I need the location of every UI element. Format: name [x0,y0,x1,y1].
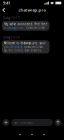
staticText: to message me: [4,26,25,29]
staticText: own AI chat at [4,45,23,49]
button[interactable]: Home [29,132,35,137]
button[interactable]: Hey, we've connected. Feel free [2,21,49,31]
staticText: chatwrap.pro [18,7,45,13]
staticText: Welcome to chatwrap.pro, your [4,42,46,45]
staticText: Today 10:18 [3,36,20,39]
button[interactable]: Back [0,6,8,14]
staticText: hpass.me/u/ask [23,45,42,49]
button[interactable]: Back [17,132,23,137]
staticText: hpass.me/u/ask [25,26,44,29]
staticText: 9:41 [3,0,10,6]
staticText: Hey, we've connected. Feel free [4,22,48,26]
staticText: Today 10:17 [3,16,20,20]
button[interactable]: Add attachment [2,119,9,126]
staticText: Tap the link to start chatting [4,49,42,52]
button[interactable]: Recents [41,132,47,137]
button[interactable]: Send [54,119,61,126]
staticText: Type a message [13,121,33,124]
button[interactable]: Welcome to chatwrap.pro, your [2,40,49,53]
